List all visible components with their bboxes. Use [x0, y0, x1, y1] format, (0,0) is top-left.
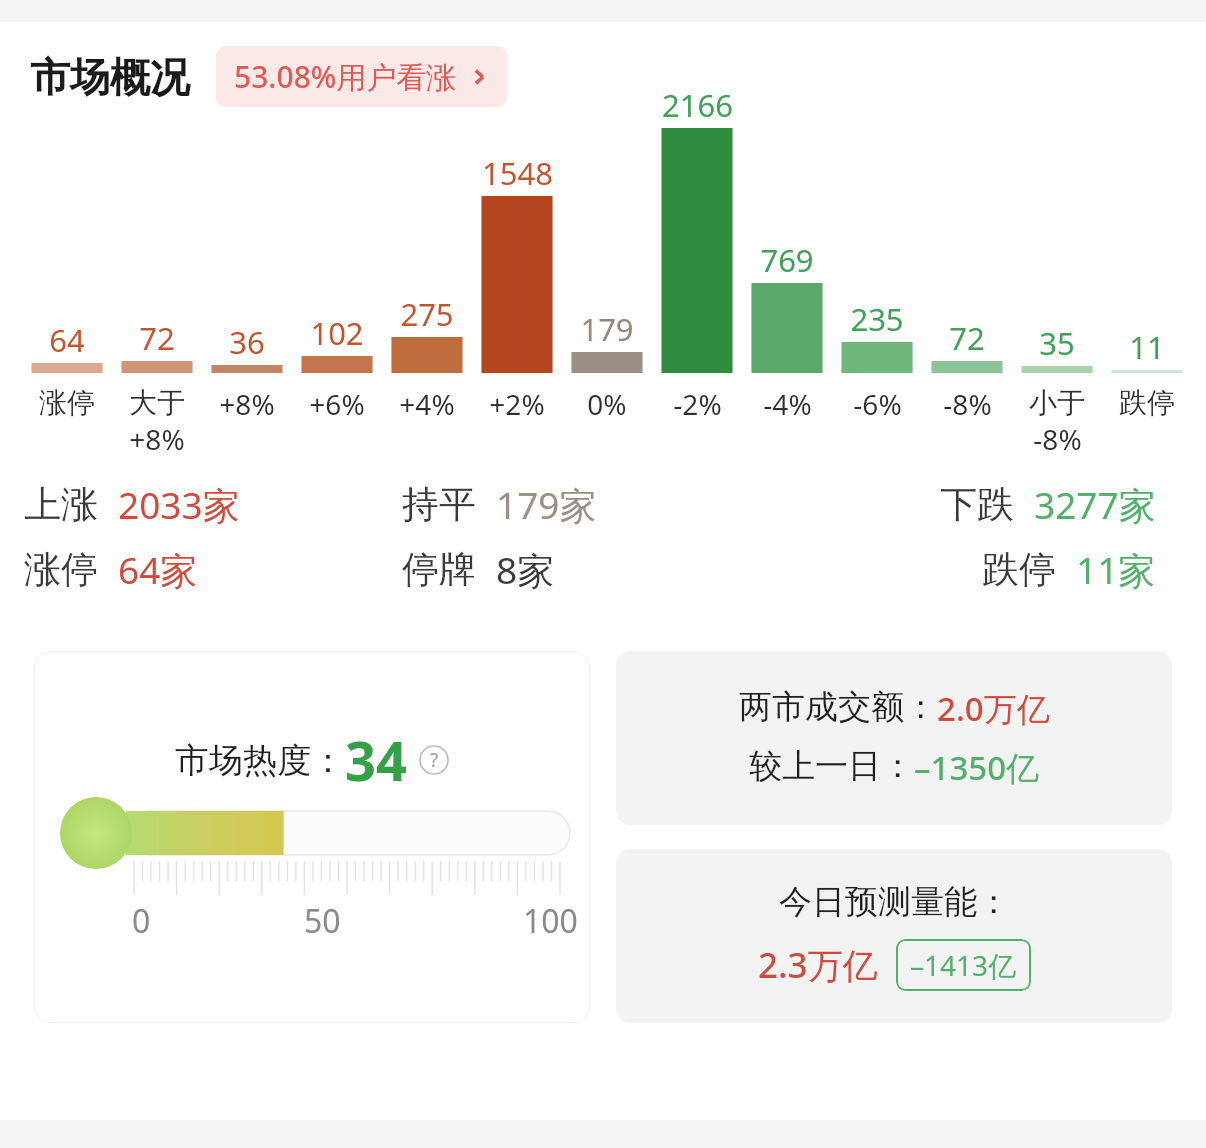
staticText: 下跌: [940, 481, 1014, 528]
staticText: 持平: [402, 481, 476, 528]
button[interactable]: 说明: [419, 745, 449, 775]
staticText: 36: [229, 321, 265, 363]
staticText: -4%: [763, 385, 812, 423]
staticText: 今日预测量能：: [779, 881, 1010, 923]
staticText: 市场概况: [30, 52, 190, 102]
staticText: 769: [760, 239, 814, 281]
staticText: –1413亿: [910, 946, 1017, 984]
staticText: 跌停: [982, 546, 1056, 593]
staticText: 53.08%用户看涨: [234, 56, 457, 97]
staticText: 35: [1039, 322, 1075, 364]
button[interactable]: 两市成交额：: [616, 651, 1172, 825]
staticText: +6%: [309, 385, 365, 423]
staticText: 11家: [1076, 544, 1156, 595]
staticText: 64家: [118, 544, 198, 595]
staticText: 市场热度：: [175, 739, 345, 782]
button[interactable]: 市场热度：: [34, 651, 590, 1023]
staticText: 大于: [129, 385, 185, 420]
staticText: 小于: [1029, 385, 1085, 420]
staticText: 上涨: [24, 481, 98, 528]
staticText: +4%: [399, 385, 455, 423]
staticText: 0%: [587, 385, 627, 423]
staticText: ?: [430, 747, 439, 773]
staticText: 275: [400, 293, 454, 335]
staticText: 1548: [482, 152, 553, 194]
staticText: 64: [49, 319, 85, 361]
staticText: +8%: [219, 385, 275, 423]
button[interactable]: 53.08%用户看涨: [216, 46, 507, 107]
staticText: 235: [850, 298, 904, 340]
staticText: 涨停: [39, 385, 95, 420]
staticText: 34: [345, 723, 407, 797]
button[interactable]: 今日预测量能：: [616, 849, 1172, 1023]
staticText: 2.3万亿: [758, 941, 878, 989]
staticText: 两市成交额：: [739, 686, 937, 728]
staticText: -6%: [853, 385, 902, 423]
staticText: 涨停: [24, 546, 98, 593]
staticText: 停牌: [402, 546, 476, 593]
staticText: 2.0万亿: [937, 686, 1050, 731]
staticText: 8家: [496, 544, 555, 595]
staticText: 跌停: [1119, 385, 1175, 420]
staticText: 179: [580, 308, 634, 350]
staticText: 0: [132, 899, 151, 943]
staticText: 较上一日：: [749, 745, 914, 787]
staticText: 2166: [662, 84, 733, 126]
staticText: 2033家: [118, 479, 240, 530]
staticText: +8%: [129, 420, 185, 458]
staticText: 102: [310, 312, 364, 354]
staticText: -8%: [1033, 420, 1082, 458]
staticText: +2%: [489, 385, 545, 423]
staticText: 100: [523, 899, 578, 943]
staticText: 3277家: [1034, 479, 1156, 530]
staticText: -8%: [943, 385, 992, 423]
staticText: –1350亿: [914, 745, 1040, 790]
staticText: 179家: [496, 479, 597, 530]
staticText: 50: [304, 899, 341, 943]
staticText: 72: [139, 317, 175, 359]
staticText: -2%: [673, 385, 722, 423]
staticText: 72: [949, 317, 985, 359]
staticText: 11: [1129, 326, 1165, 368]
